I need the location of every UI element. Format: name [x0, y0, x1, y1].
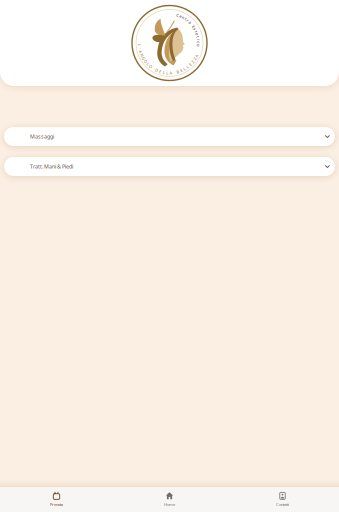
- staticText: L: [187, 64, 189, 69]
- button[interactable]: Contatti: [226, 487, 339, 512]
- staticText: ': [139, 45, 140, 51]
- staticText: Prenota: [50, 502, 63, 507]
- staticText: L: [166, 70, 168, 76]
- staticText: E: [192, 24, 194, 29]
- staticText: L: [163, 70, 165, 75]
- staticText: N: [140, 52, 143, 58]
- button[interactable]: Massaggi: [4, 127, 335, 146]
- button[interactable]: Prenota: [0, 487, 113, 512]
- staticText: Contatti: [276, 502, 289, 507]
- staticText: B: [176, 69, 179, 74]
- staticText: n: [182, 15, 184, 20]
- staticText: i: [198, 37, 199, 42]
- staticText: t: [196, 29, 197, 34]
- staticText: o: [197, 42, 199, 48]
- staticText: Z: [194, 56, 196, 62]
- staticText: D: [155, 68, 158, 73]
- staticText: O: [149, 64, 152, 69]
- staticText: e: [196, 31, 198, 37]
- staticText: A: [169, 70, 172, 76]
- staticText: t: [197, 34, 198, 39]
- staticText: E: [189, 62, 191, 67]
- staticText: L: [184, 66, 186, 71]
- staticText: Home: [164, 502, 175, 507]
- button[interactable]: Home: [113, 487, 226, 512]
- staticText: r: [187, 18, 189, 23]
- staticText: Massaggi: [30, 133, 54, 140]
- staticText: E: [159, 69, 161, 74]
- staticText: L: [147, 61, 149, 67]
- button[interactable]: Tratt. Mani & Piedi: [4, 157, 335, 176]
- staticText: E: [180, 68, 182, 73]
- staticText: L: [138, 42, 140, 47]
- staticText: e: [180, 14, 182, 19]
- staticText: Tratt. Mani & Piedi: [30, 163, 73, 170]
- staticText: O: [144, 59, 147, 64]
- staticText: c: [197, 40, 199, 45]
- staticText: Z: [192, 59, 194, 64]
- staticText: G: [142, 56, 145, 61]
- staticText: C: [176, 13, 179, 18]
- staticText: [191, 22, 192, 27]
- staticText: A: [195, 53, 198, 58]
- staticText: t: [185, 16, 186, 21]
- staticText: o: [189, 20, 191, 25]
- staticText: s: [194, 26, 196, 32]
- staticText: A: [139, 49, 142, 54]
